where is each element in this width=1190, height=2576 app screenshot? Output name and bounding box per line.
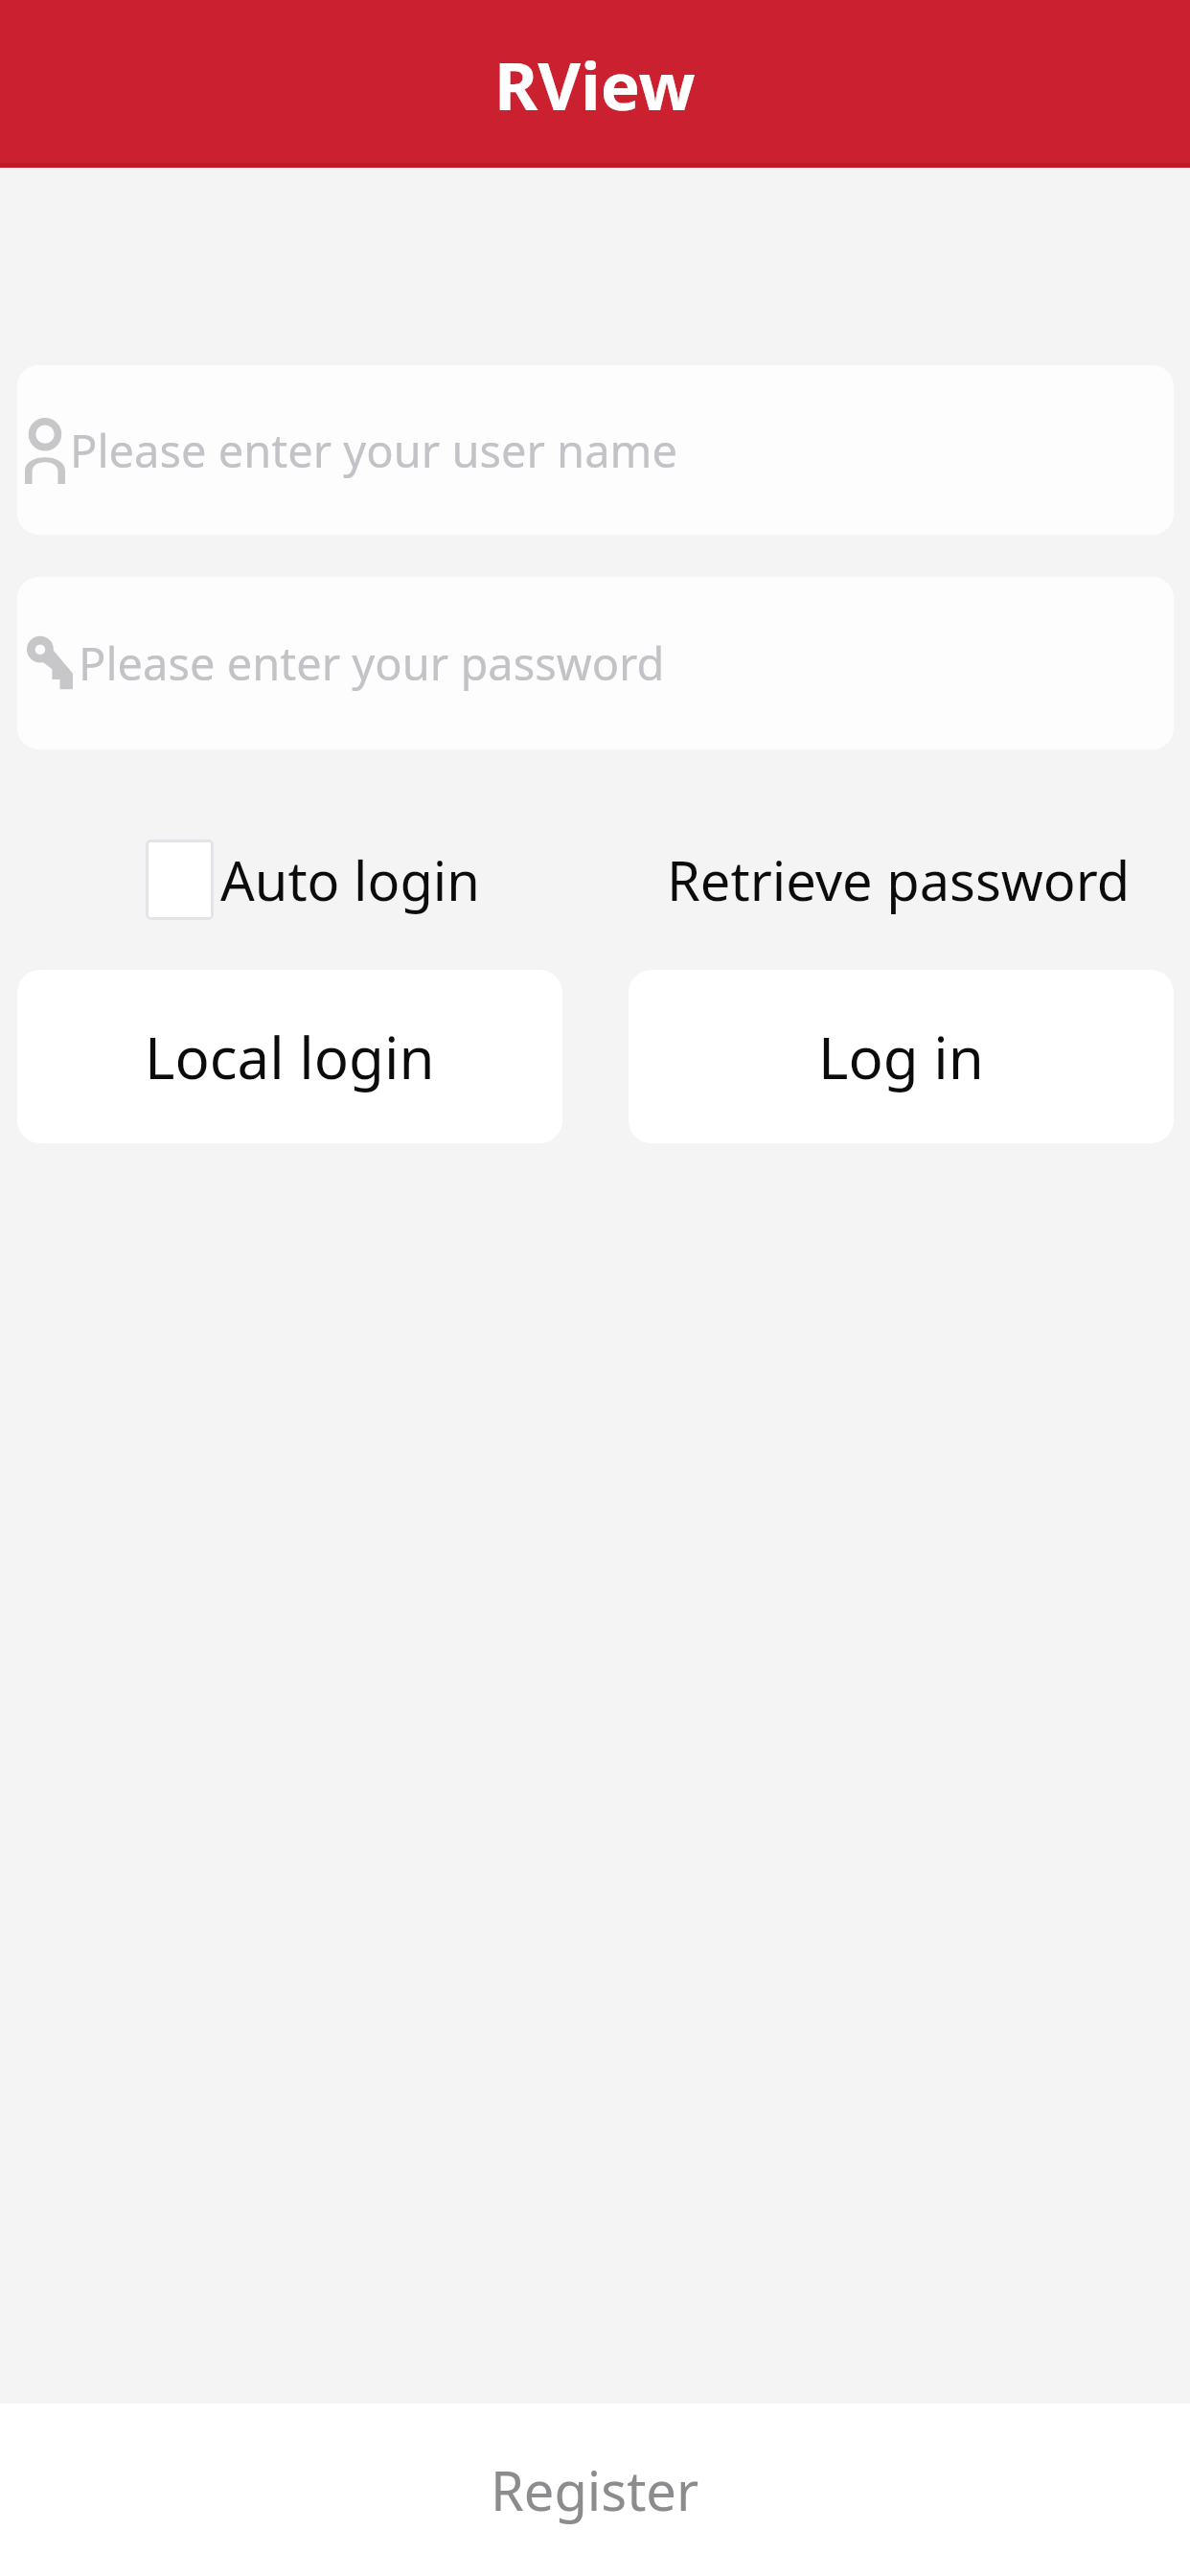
button[interactable]: Log in — [629, 970, 1174, 1143]
button[interactable]: Auto login — [139, 833, 487, 927]
button[interactable]: Local login — [17, 970, 562, 1143]
staticText: Please enter your password — [79, 632, 665, 694]
staticText: Auto login — [220, 843, 480, 916]
staticText: Log in — [818, 1018, 984, 1096]
staticText: Retrieve password — [667, 843, 1131, 916]
button[interactable]: Register — [0, 2403, 1190, 2576]
button[interactable]: User — [17, 365, 1174, 535]
button[interactable]: Password — [17, 577, 1174, 749]
other: Password — [27, 636, 73, 691]
staticText: RView — [494, 39, 696, 129]
button[interactable]: Retrieve password — [661, 836, 1136, 924]
staticText: Register — [491, 2453, 699, 2526]
other: User — [25, 417, 65, 484]
staticText: Local login — [145, 1018, 435, 1096]
staticText: Please enter your user name — [70, 420, 677, 481]
